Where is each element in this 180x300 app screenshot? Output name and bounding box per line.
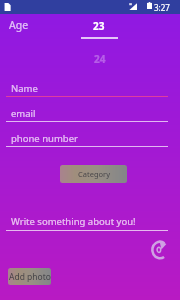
staticText: email	[11, 107, 36, 120]
button[interactable]: Add photo	[8, 268, 51, 285]
staticText: Write something about you!	[11, 215, 136, 228]
staticText: 3:27	[154, 2, 170, 13]
staticText: 24	[94, 52, 106, 66]
staticText: Age	[9, 18, 29, 32]
staticText: Name	[11, 82, 38, 95]
staticText: Add photo	[9, 271, 51, 283]
staticText: 23	[93, 19, 105, 33]
button[interactable]: Category	[60, 165, 127, 183]
button[interactable]: Rotate	[150, 238, 171, 262]
staticText: phone number	[11, 132, 78, 145]
staticText: Category	[78, 169, 110, 179]
